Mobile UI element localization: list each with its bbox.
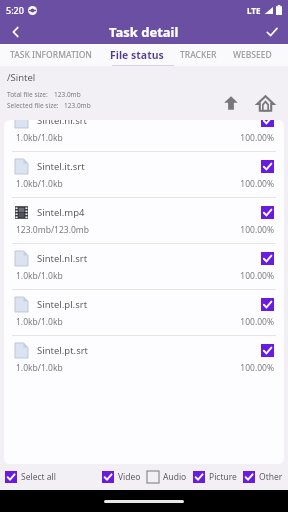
staticText: Sintel.pl.srt	[37, 298, 88, 311]
staticText: TASK INFORMATION	[10, 49, 92, 61]
staticText: 100.00%	[240, 316, 274, 328]
button[interactable]: Audio	[147, 468, 187, 486]
button[interactable]: Home gesture	[104, 500, 184, 503]
staticText: 1.0kb/1.0kb	[16, 316, 63, 328]
staticText: 123.0mb	[54, 90, 81, 99]
staticText: Sintel.hr.srt	[37, 120, 88, 127]
staticText: Task detail	[109, 23, 179, 41]
staticText: Video	[118, 471, 141, 483]
button[interactable]: TASK INFORMATION	[0, 44, 102, 66]
button[interactable]: Sintel.nl.srt	[4, 244, 284, 290]
button[interactable]: Sintel.it.srt	[4, 152, 284, 198]
button[interactable]: Sintel.pt.srt	[4, 336, 284, 382]
staticText: 123.0mb	[64, 101, 91, 110]
button[interactable]: Select all	[5, 468, 56, 486]
staticText: Sintel.mp4	[37, 206, 85, 219]
button[interactable]: Back	[0, 20, 32, 44]
staticText: 123.0mb/123.0mb	[16, 224, 89, 236]
button[interactable]: Up one folder	[218, 90, 244, 116]
button[interactable]: WEBSEED	[225, 44, 280, 66]
staticText: 1.0kb/1.0kb	[16, 362, 63, 374]
button[interactable]: Picture	[193, 468, 237, 486]
button[interactable]: File status	[102, 44, 172, 66]
button[interactable]: Checked	[261, 252, 274, 265]
staticText: TRACKER	[180, 49, 217, 61]
staticText: 100.00%	[240, 270, 274, 282]
staticText: 1.0kb/1.0kb	[16, 270, 63, 282]
button[interactable]: Checked	[261, 344, 274, 357]
staticText: 100.00%	[240, 132, 274, 144]
button[interactable]: Video	[102, 468, 141, 486]
staticText: 100.00%	[240, 362, 274, 374]
button[interactable]: Confirm	[256, 20, 288, 44]
staticText: WEBSEED	[233, 49, 272, 61]
staticText: Total file size:	[7, 90, 48, 99]
staticText: Picture	[209, 471, 237, 483]
staticText: 5:20	[6, 4, 24, 16]
staticText: LTE	[247, 5, 261, 16]
button[interactable]: Sintel.mp4	[4, 198, 284, 244]
staticText: 1.0kb/1.0kb	[16, 178, 63, 190]
button[interactable]: Other	[243, 468, 283, 486]
button[interactable]: Checked	[261, 120, 274, 127]
staticText: Sintel.it.srt	[37, 160, 85, 173]
staticText: File status	[110, 48, 164, 62]
button[interactable]: Checked	[261, 298, 274, 311]
staticText: 100.00%	[240, 178, 274, 190]
staticText: 1.0kb/1.0kb	[16, 132, 63, 144]
staticText: Other	[259, 471, 283, 483]
staticText: Select all	[21, 471, 56, 483]
staticText: Sintel.nl.srt	[37, 252, 88, 265]
staticText: Selected file size:	[7, 101, 59, 110]
staticText: /Sintel	[7, 71, 36, 84]
staticText: Audio	[163, 471, 187, 483]
button[interactable]: TRACKER	[172, 44, 225, 66]
staticText: 100.00%	[240, 224, 274, 236]
button[interactable]: Sintel.pl.srt	[4, 290, 284, 336]
button[interactable]: Sintel.hr.srt	[4, 120, 284, 152]
button[interactable]: Checked	[261, 160, 274, 173]
button[interactable]: Checked	[261, 206, 274, 219]
staticText: Sintel.pt.srt	[37, 344, 89, 357]
button[interactable]: Home folder	[252, 90, 278, 116]
